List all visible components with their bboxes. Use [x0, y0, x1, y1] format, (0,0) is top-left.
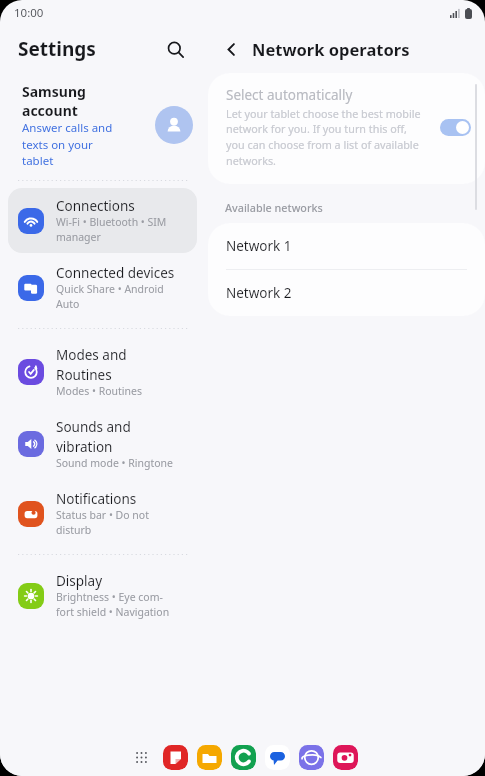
- button[interactable]: Sounds and vibration: [8, 409, 197, 479]
- button[interactable]: internet: [298, 744, 324, 770]
- staticText: Modes and Routines: [56, 346, 127, 384]
- staticText: Samsung account: [22, 82, 86, 120]
- staticText: Brightness • Eye com- fort shield • Navi…: [56, 590, 170, 619]
- button[interactable]: Display: [8, 563, 197, 628]
- button[interactable]: Samsung account: [0, 72, 205, 176]
- button[interactable]: Connected devices: [8, 255, 197, 320]
- staticText: Network 1: [226, 237, 292, 255]
- button[interactable]: Notifications: [8, 481, 197, 546]
- button[interactable]: Network 2: [208, 270, 485, 316]
- button[interactable]: messages: [264, 744, 290, 770]
- staticText: Display: [56, 572, 103, 590]
- button[interactable]: Select automatically toggle: [440, 119, 471, 136]
- staticText: Connected devices: [56, 264, 175, 282]
- staticText: 10:00: [14, 5, 44, 21]
- staticText: Connections: [56, 197, 135, 215]
- staticText: Select automatically: [226, 86, 353, 104]
- staticText: Quick Share • Android Auto: [56, 282, 164, 311]
- staticText: Let your tablet choose the best mobile n…: [226, 106, 421, 168]
- button[interactable]: phone: [230, 744, 256, 770]
- button[interactable]: Select automatically: [208, 73, 485, 184]
- staticText: Status bar • Do not disturb: [56, 508, 149, 537]
- staticText: Wi-Fi • Bluetooth • SIM manager: [56, 215, 167, 244]
- button[interactable]: Modes and Routines: [8, 337, 197, 407]
- staticText: Sounds and vibration: [56, 418, 131, 456]
- button[interactable]: notes: [162, 744, 188, 770]
- staticText: Network operators: [252, 38, 410, 60]
- staticText: Settings: [18, 36, 96, 62]
- button[interactable]: All apps: [127, 743, 155, 771]
- button[interactable]: Network 1: [208, 223, 485, 269]
- button[interactable]: camera: [332, 744, 358, 770]
- button[interactable]: Search: [158, 32, 192, 66]
- staticText: Answer calls and texts on your tablet: [22, 120, 113, 168]
- staticText: Sound mode • Ringtone: [56, 456, 173, 470]
- staticText: Modes • Routines: [56, 384, 143, 398]
- button[interactable]: Connections: [8, 188, 197, 253]
- staticText: Network 2: [226, 284, 292, 302]
- staticText: Notifications: [56, 490, 137, 508]
- button[interactable]: files: [196, 744, 222, 770]
- button[interactable]: Back: [216, 34, 246, 64]
- staticText: Available networks: [225, 200, 323, 215]
